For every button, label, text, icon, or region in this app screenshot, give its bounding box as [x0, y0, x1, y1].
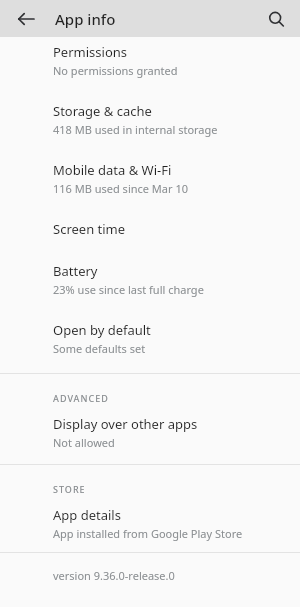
staticText: Some defaults set	[53, 341, 146, 356]
staticText: App info	[55, 9, 116, 29]
staticText: 116 MB used since Mar 10	[53, 181, 189, 196]
staticText: STORE	[53, 483, 86, 495]
button[interactable]: Mobile data & Wi-Fi	[0, 137, 300, 196]
staticText: Mobile data & Wi-Fi	[53, 161, 172, 179]
staticText: Screen time	[53, 220, 126, 238]
staticText: ADVANCED	[53, 392, 109, 404]
staticText: Permissions	[53, 43, 128, 61]
button[interactable]: Display over other apps	[0, 404, 300, 450]
staticText: Open by default	[53, 321, 151, 339]
staticText: 23% use since last full charge	[53, 282, 204, 297]
button[interactable]: Screen time	[0, 196, 300, 238]
staticText: App details	[53, 506, 121, 524]
button[interactable]: Permissions	[0, 37, 300, 78]
staticText: Not allowed	[53, 435, 115, 450]
staticText: Battery	[53, 262, 98, 280]
staticText: Display over other apps	[53, 415, 198, 433]
staticText: No permissions granted	[53, 63, 178, 78]
button[interactable]: Open by default	[0, 297, 300, 356]
button[interactable]: Back	[14, 7, 38, 31]
staticText: Storage & cache	[53, 102, 152, 120]
button[interactable]: Storage & cache	[0, 78, 300, 137]
button[interactable]: App details	[0, 495, 300, 541]
staticText: version 9.36.0-release.0	[53, 568, 175, 583]
button[interactable]: Search	[264, 7, 288, 31]
staticText: App installed from Google Play Store	[53, 526, 243, 541]
staticText: 418 MB used in internal storage	[53, 122, 218, 137]
button[interactable]: Battery	[0, 238, 300, 297]
